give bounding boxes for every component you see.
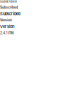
staticText: 2.4.1 (118) xyxy=(0,31,14,35)
staticText: Subscribed xyxy=(0,5,18,9)
staticText: Version xyxy=(0,18,12,22)
staticText: Version xyxy=(0,24,14,29)
staticText: Subscribed xyxy=(0,0,17,3)
staticText: Subscribed xyxy=(0,11,20,16)
